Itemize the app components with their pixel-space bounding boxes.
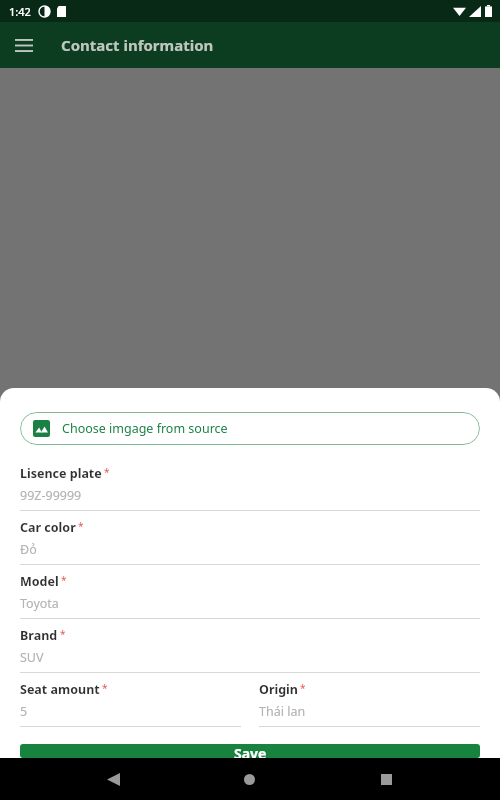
button[interactable]: Car color xyxy=(20,519,480,573)
staticText: Model xyxy=(20,573,59,590)
staticText: * xyxy=(102,681,108,695)
button[interactable]: Lisence plate xyxy=(20,465,480,519)
staticText: Brand xyxy=(20,627,58,644)
staticText: SUV xyxy=(20,649,44,666)
staticText: Save xyxy=(234,744,267,758)
button[interactable]: Choose imgage from source xyxy=(20,412,480,445)
staticText: * xyxy=(300,681,306,695)
staticText: Car color xyxy=(20,519,76,536)
staticText: * xyxy=(61,573,67,587)
button[interactable]: Home xyxy=(226,758,272,800)
staticText: 5 xyxy=(20,703,28,720)
staticText: * xyxy=(60,627,66,641)
staticText: Origin xyxy=(259,681,298,698)
staticText: Choose imgage from source xyxy=(62,420,228,437)
staticText: 1:42 xyxy=(9,4,31,19)
button[interactable]: Save xyxy=(20,744,480,758)
staticText: * xyxy=(78,519,84,533)
staticText: Thái lan xyxy=(259,703,306,720)
button[interactable]: Recent apps xyxy=(363,758,409,800)
button[interactable]: Seat amount xyxy=(20,681,241,735)
staticText: 99Z-99999 xyxy=(20,487,82,504)
button[interactable]: Open navigation menu xyxy=(8,29,40,61)
staticText: Lisence plate xyxy=(20,465,102,482)
staticText: Đỏ xyxy=(20,541,37,558)
button[interactable]: Model xyxy=(20,573,480,627)
button[interactable]: Back xyxy=(90,758,136,800)
staticText: Seat amount xyxy=(20,681,100,698)
button[interactable]: Origin xyxy=(259,681,480,735)
staticText: * xyxy=(104,465,110,479)
staticText: Toyota xyxy=(20,595,59,612)
staticText: Contact information xyxy=(61,35,214,55)
button[interactable]: Brand xyxy=(20,627,480,681)
